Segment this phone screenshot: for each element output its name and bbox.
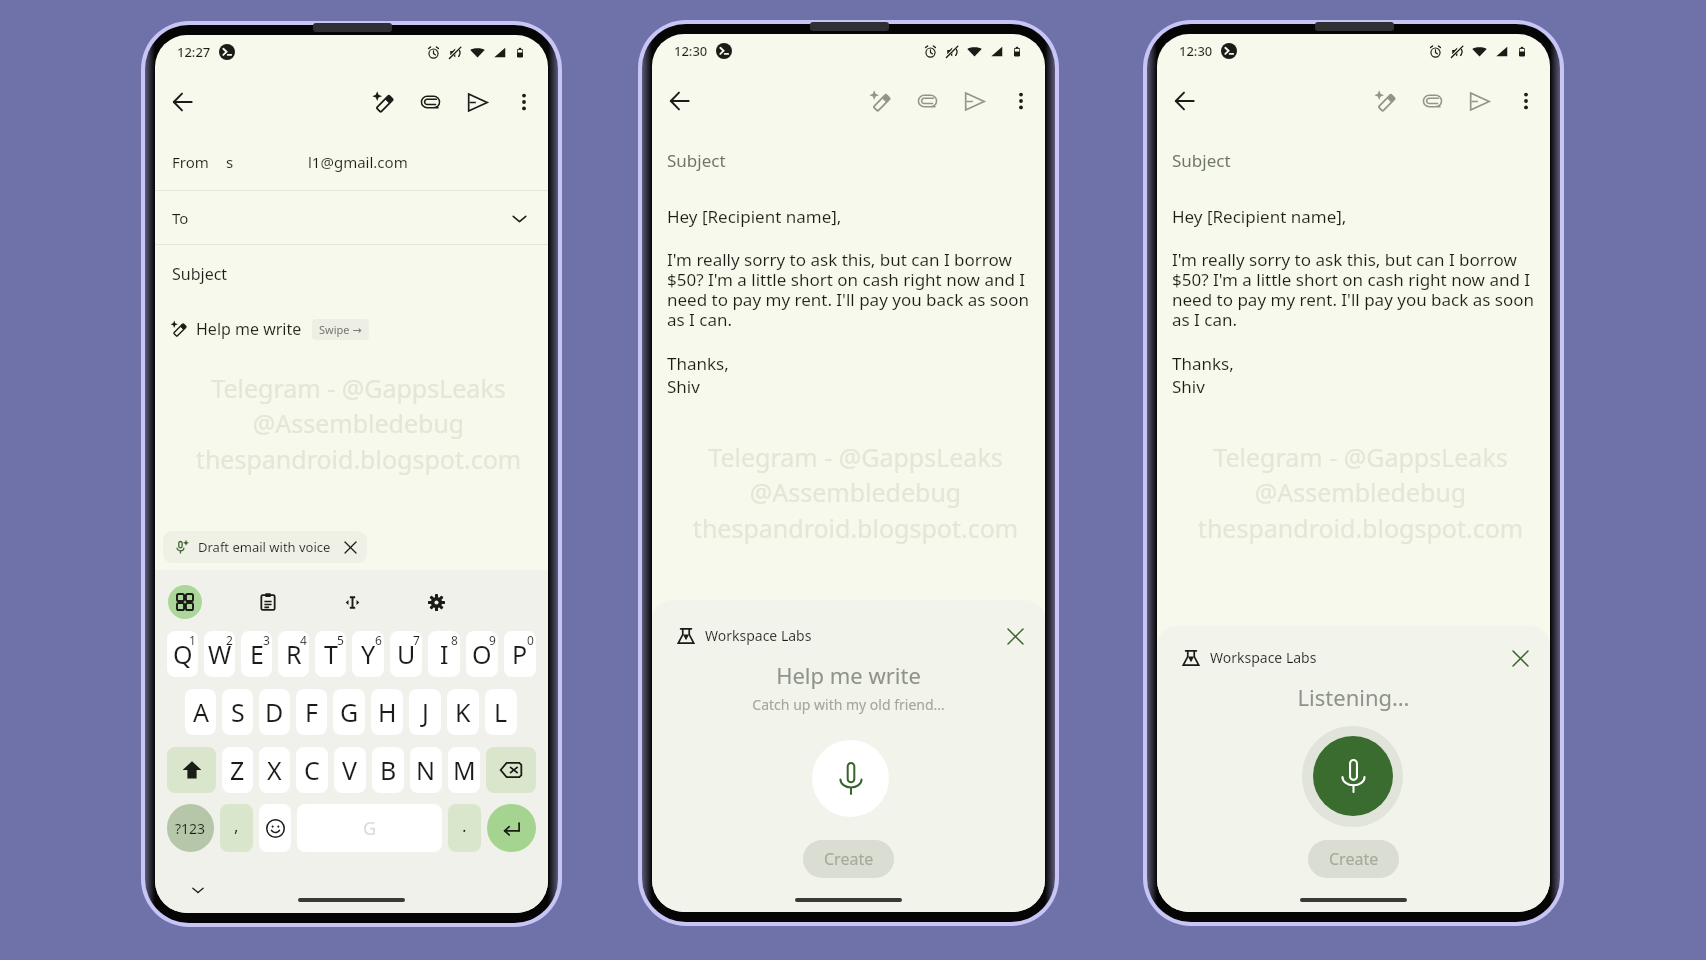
staticText: Y bbox=[361, 637, 376, 671]
staticText: J bbox=[422, 695, 429, 729]
staticText: A bbox=[193, 695, 209, 729]
staticText: Help me write bbox=[652, 660, 1045, 690]
button[interactable]: S bbox=[222, 689, 253, 735]
button[interactable]: Hide keyboard bbox=[185, 877, 211, 903]
button[interactable]: Back bbox=[658, 79, 702, 123]
button[interactable]: H bbox=[371, 689, 403, 735]
button[interactable]: Z bbox=[222, 747, 253, 793]
button[interactable]: D bbox=[259, 689, 290, 735]
button[interactable]: More options bbox=[999, 79, 1043, 123]
button[interactable]: G bbox=[333, 689, 365, 735]
other: Workspace Labs bbox=[677, 627, 695, 645]
staticText: I'm really sorry to ask this, but can I … bbox=[667, 248, 1033, 331]
button[interactable]: F bbox=[296, 689, 327, 735]
staticText: l1@gmail.com bbox=[308, 152, 408, 172]
button[interactable]: Keyboard settings bbox=[419, 585, 453, 619]
button[interactable]: To bbox=[155, 192, 548, 244]
button[interactable]: W bbox=[204, 631, 235, 677]
staticText: C bbox=[304, 753, 320, 787]
button[interactable]: O bbox=[466, 631, 498, 677]
button[interactable]: E bbox=[241, 631, 272, 677]
button[interactable]: X bbox=[259, 747, 290, 793]
button[interactable]: Attach file bbox=[1410, 79, 1454, 123]
staticText: G bbox=[340, 695, 359, 729]
button[interactable]: Start recording bbox=[812, 740, 889, 817]
staticText: Thanks, bbox=[1172, 352, 1234, 375]
button[interactable]: Back bbox=[1163, 79, 1207, 123]
staticText: E bbox=[250, 637, 264, 671]
staticText: , bbox=[234, 814, 239, 837]
button[interactable]: ?123 bbox=[167, 804, 214, 852]
button[interactable]: Swipe → bbox=[312, 319, 369, 340]
button[interactable]: V bbox=[334, 747, 366, 793]
staticText: Q bbox=[173, 637, 193, 671]
staticText: I'm really sorry to ask this, but can I … bbox=[1172, 248, 1538, 331]
staticText: 9 bbox=[489, 632, 496, 648]
button[interactable]: Enter bbox=[487, 804, 536, 852]
button[interactable]: Toolbar bbox=[168, 585, 202, 619]
button[interactable]: Close bbox=[1503, 641, 1537, 675]
button[interactable]: Q bbox=[167, 631, 198, 677]
button[interactable]: Text editing bbox=[335, 585, 369, 619]
staticText: Swipe → bbox=[319, 322, 362, 337]
button[interactable]: From bbox=[155, 137, 548, 187]
button[interactable]: B bbox=[372, 747, 404, 793]
button[interactable]: More options bbox=[1504, 79, 1548, 123]
button[interactable]: Back bbox=[161, 80, 205, 124]
staticText: Workspace Labs bbox=[705, 626, 812, 645]
button[interactable]: Send bbox=[1457, 79, 1501, 123]
button[interactable]: Help me write bbox=[155, 308, 548, 350]
staticText: ?123 bbox=[175, 819, 206, 838]
button[interactable]: J bbox=[409, 689, 441, 735]
staticText: 12:30 bbox=[1179, 42, 1213, 60]
button[interactable]: A bbox=[185, 689, 216, 735]
button[interactable]: Send bbox=[952, 79, 996, 123]
button[interactable]: Help me write bbox=[1363, 79, 1407, 123]
button[interactable]: Send bbox=[455, 80, 499, 124]
button[interactable]: Stop recording bbox=[1313, 736, 1393, 816]
button[interactable]: Emoji bbox=[259, 804, 291, 852]
button[interactable]: Shift bbox=[167, 747, 216, 793]
button[interactable]: Clipboard bbox=[251, 585, 285, 619]
staticText: Hey [Recipient name], bbox=[667, 205, 842, 228]
button[interactable]: , bbox=[220, 804, 253, 852]
staticText: 6 bbox=[375, 632, 382, 648]
button[interactable]: U bbox=[390, 631, 422, 677]
button[interactable]: Draft email with voice bbox=[163, 531, 367, 563]
staticText: Telegram - @GappsLeaks @Assembledebug th… bbox=[162, 371, 548, 477]
staticText: Help me write bbox=[196, 318, 302, 340]
button[interactable]: More options bbox=[502, 80, 546, 124]
button[interactable]: L bbox=[485, 689, 517, 735]
button[interactable]: Attach file bbox=[905, 79, 949, 123]
button[interactable]: Help me write bbox=[858, 79, 902, 123]
button[interactable]: Help me write bbox=[361, 80, 405, 124]
staticText: N bbox=[416, 753, 436, 787]
button[interactable]: N bbox=[410, 747, 442, 793]
staticText: Listening… bbox=[1157, 682, 1550, 712]
button[interactable]: Attach file bbox=[408, 80, 452, 124]
button[interactable]: C bbox=[296, 747, 328, 793]
button[interactable]: Y bbox=[352, 631, 384, 677]
button[interactable]: Create bbox=[803, 840, 894, 878]
button[interactable]: Backspace bbox=[486, 747, 536, 793]
staticText: Shiv bbox=[667, 375, 700, 398]
button[interactable]: K bbox=[447, 689, 479, 735]
button[interactable]: Space bbox=[297, 804, 442, 852]
button[interactable]: P bbox=[504, 631, 536, 677]
button[interactable]: Close bbox=[998, 619, 1032, 653]
button[interactable]: Create bbox=[1308, 840, 1399, 878]
staticText: 5 bbox=[337, 632, 344, 648]
staticText: 8 bbox=[451, 632, 458, 648]
staticText: D bbox=[265, 695, 284, 729]
staticText: Subject bbox=[667, 149, 726, 172]
staticText: Subject bbox=[172, 263, 228, 285]
button[interactable]: . bbox=[448, 804, 481, 852]
button[interactable]: I bbox=[428, 631, 460, 677]
staticText: G bbox=[363, 816, 377, 841]
staticText: O bbox=[472, 637, 492, 671]
staticText: Telegram - @GappsLeaks @Assembledebug th… bbox=[1164, 440, 1550, 546]
button[interactable]: T bbox=[315, 631, 346, 677]
button[interactable]: M bbox=[448, 747, 480, 793]
button[interactable]: Subject bbox=[155, 248, 548, 300]
button[interactable]: R bbox=[278, 631, 309, 677]
